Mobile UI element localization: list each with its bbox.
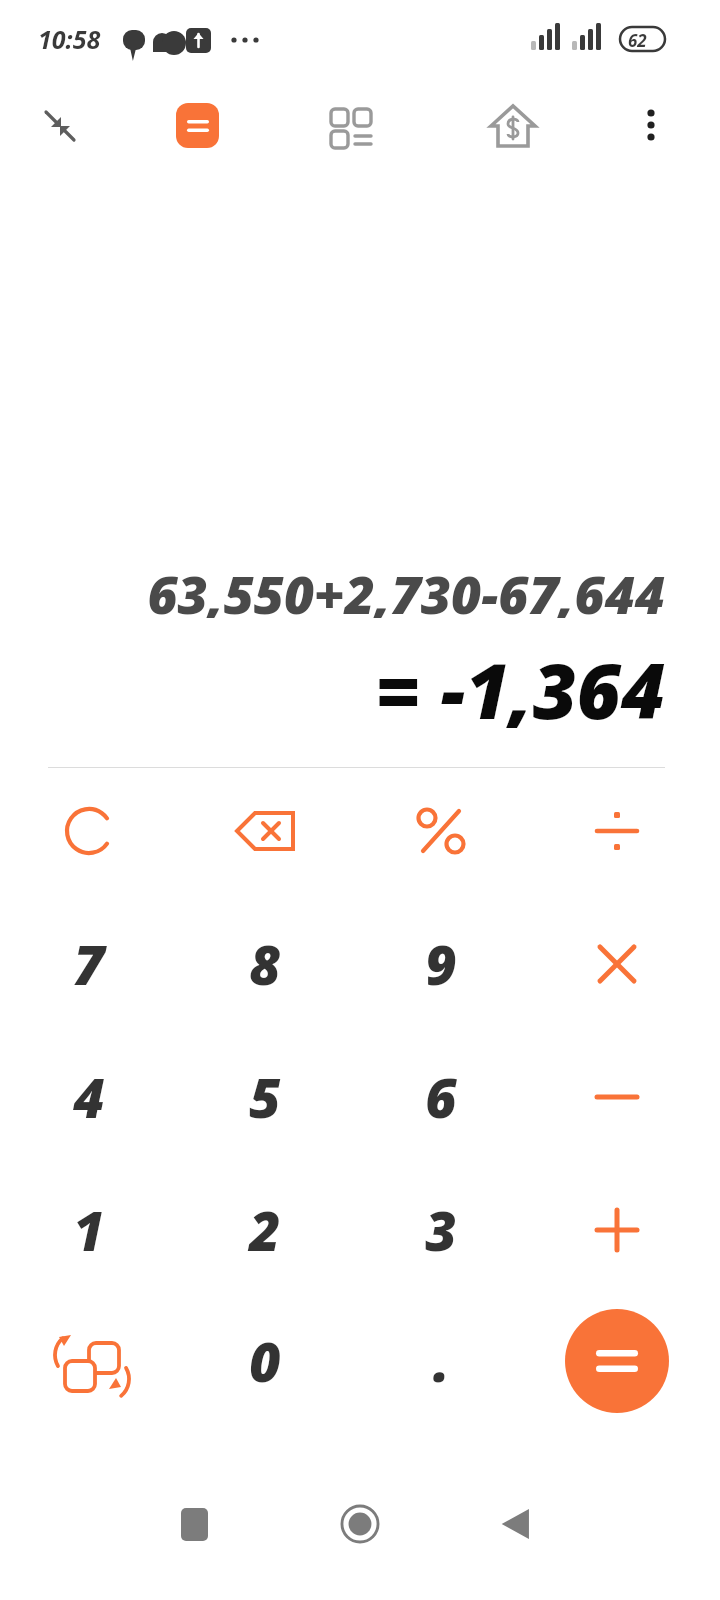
button[interactable]: Equals [565,1309,669,1413]
staticText: 6 [425,1060,457,1134]
button[interactable]: Collapse [30,96,90,156]
staticText: 63,550+2,730-67,644 [48,558,665,618]
staticText: 62 [628,29,647,52]
button[interactable]: 4 [29,1037,149,1157]
button[interactable]: Backspace [205,771,325,891]
button[interactable]: Plus [557,1170,677,1290]
button[interactable]: 7 [29,904,149,1024]
button[interactable]: Back [472,1480,560,1568]
staticText: 10:58 [38,22,101,56]
button[interactable]: Percent [381,771,501,891]
button[interactable]: 1 [29,1170,149,1290]
button[interactable]: Loan calculator [482,96,544,158]
button[interactable]: Multiply [557,904,677,1024]
button[interactable]: Home [316,1480,404,1568]
button[interactable]: 9 [381,904,501,1024]
button[interactable]: Swap units [29,1301,149,1421]
staticText: 3 [425,1193,457,1267]
button[interactable]: 2 [205,1170,325,1290]
button[interactable]: 8 [205,904,325,1024]
staticText: 8 [249,927,281,1001]
button[interactable]: Divide [557,771,677,891]
button[interactable]: More options [622,96,680,154]
staticText: 0 [249,1324,281,1398]
staticText: 5 [249,1060,281,1134]
staticText: 1 [73,1193,105,1267]
button[interactable]: 3 [381,1170,501,1290]
button[interactable]: 0 [205,1301,325,1421]
button[interactable]: Recent apps [150,1480,238,1568]
button[interactable]: Minus [557,1037,677,1157]
button[interactable]: 6 [381,1037,501,1157]
staticText: 9 [425,927,457,1001]
button[interactable]: Categories [322,98,380,156]
button[interactable]: 5 [205,1037,325,1157]
staticText: . [433,1324,450,1398]
staticText: 4 [73,1060,105,1134]
button[interactable]: Clear [29,771,149,891]
button[interactable]: Calculator [176,103,219,148]
button[interactable]: . [381,1301,501,1421]
staticText: = -1,364 [48,638,665,728]
staticText: 7 [73,927,105,1001]
staticText: 2 [249,1193,281,1267]
